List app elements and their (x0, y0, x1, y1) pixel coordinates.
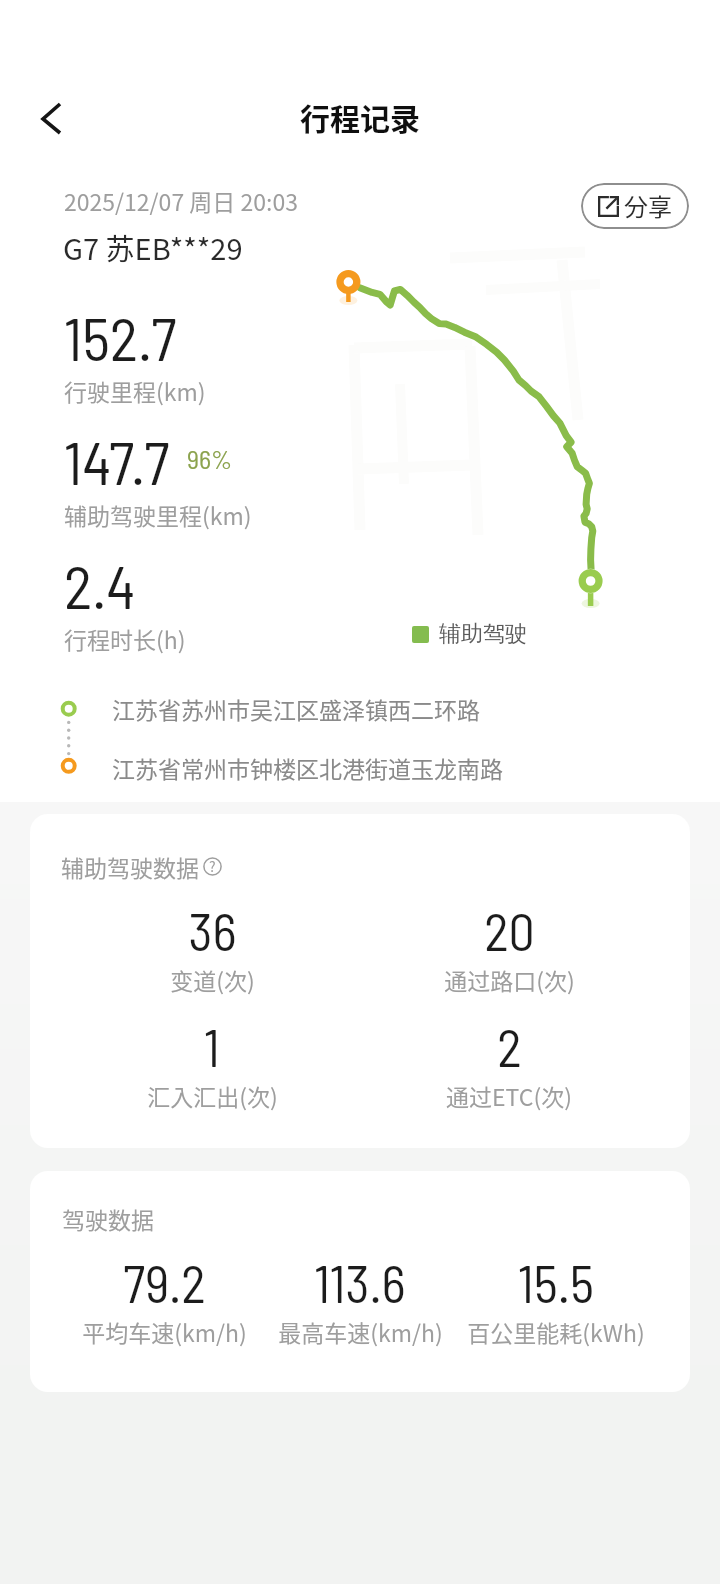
staticText: 最高车速(km/h) (278, 1315, 443, 1348)
button[interactable]: Info about assisted driving data (203, 857, 222, 876)
button[interactable]: 分享 Share (581, 183, 689, 229)
staticText: 2.4 (64, 549, 136, 621)
staticText: 汇入汇出(次) (147, 1079, 278, 1112)
staticText: 辅助驾驶里程(km) (64, 498, 252, 531)
staticText: 平均车速(km/h) (82, 1315, 247, 1348)
staticText: 江苏省苏州市吴江区盛泽镇西二环路 (112, 692, 480, 725)
staticText: 分享 (624, 188, 672, 223)
staticText: 驾驶数据 (62, 1202, 154, 1235)
staticText: 行驶里程(km) (64, 374, 206, 407)
staticText: 96% (187, 443, 233, 474)
staticText: 20 (484, 899, 535, 961)
staticText: 变道(次) (170, 963, 255, 996)
staticText: 行程时长(h) (64, 622, 186, 655)
staticText: 百公里能耗(kWh) (467, 1315, 645, 1348)
staticText: 辅助驾驶数据 (61, 850, 199, 883)
staticText: 113.6 (314, 1251, 406, 1313)
staticText: 147.7 (64, 425, 170, 497)
staticText: 2025/12/07 周日 20:03 (64, 184, 298, 217)
staticText: 152.7 (64, 301, 177, 373)
staticText: 江苏省常州市钟楼区北港街道玉龙南路 (112, 751, 503, 784)
button[interactable]: 江苏省苏州市吴江区盛泽镇西二环路 (52, 685, 672, 731)
staticText: ? (209, 856, 216, 875)
staticText: 辅助驾驶 (439, 620, 527, 648)
staticText: G7 苏EB***29 (63, 226, 243, 268)
staticText: 36 (188, 899, 237, 961)
button[interactable]: Back (24, 94, 78, 144)
staticText: 15.5 (518, 1251, 594, 1313)
staticText: 行程记录 (300, 95, 420, 138)
staticText: 79.2 (123, 1251, 206, 1313)
staticText: 通过路口(次) (444, 963, 575, 996)
staticText: 1 (204, 1015, 220, 1077)
staticText: 2 (497, 1015, 522, 1077)
button[interactable]: 江苏省常州市钟楼区北港街道玉龙南路 (52, 744, 672, 790)
staticText: 通过ETC(次) (446, 1079, 572, 1112)
